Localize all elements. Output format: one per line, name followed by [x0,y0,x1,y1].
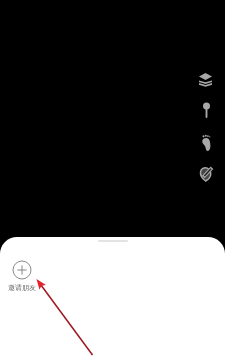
button[interactable]: 邀请朋友 [7,260,36,292]
button[interactable]: Drop pin [197,101,215,118]
staticText: 邀请朋友 [8,283,36,292]
button[interactable]: Map layers [197,71,214,88]
button[interactable]: Edit location [197,165,215,182]
button[interactable]: Footprints [197,134,215,151]
